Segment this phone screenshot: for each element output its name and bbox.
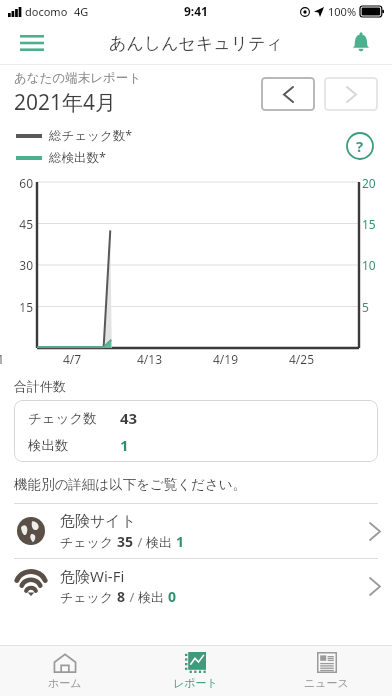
button[interactable]: 危険Wi-Fi xyxy=(0,559,392,613)
button[interactable]: Help xyxy=(342,128,378,164)
staticText: 合計件数 xyxy=(14,378,66,394)
staticText: 4/1 xyxy=(0,351,5,367)
staticText: / xyxy=(134,533,146,551)
staticText: 総検出数* xyxy=(49,149,106,166)
staticText: ニュース xyxy=(304,676,349,690)
staticText: チェック xyxy=(60,588,117,606)
staticText: 5 xyxy=(362,299,392,315)
staticText: チェック xyxy=(60,533,117,551)
staticText: ? xyxy=(356,136,364,156)
button[interactable]: ホーム xyxy=(0,646,130,696)
staticText: 20 xyxy=(362,175,392,191)
staticText: 機能別の詳細は以下をご覧ください。 xyxy=(14,476,247,493)
staticText: 4/13 xyxy=(137,351,163,367)
staticText: 15 xyxy=(362,216,392,232)
staticText: / xyxy=(126,588,138,606)
staticText: 危険Wi-Fi xyxy=(60,566,125,586)
button[interactable]: 危険サイト xyxy=(0,504,392,558)
staticText: レポート xyxy=(173,676,218,690)
staticText: 1 xyxy=(176,532,185,551)
staticText: 8 xyxy=(117,587,126,606)
staticText: チェック数 xyxy=(28,410,97,427)
staticText: 検出 xyxy=(146,533,176,551)
staticText: 9:41 xyxy=(184,3,208,19)
staticText: 10 xyxy=(362,257,392,273)
staticText: 30 xyxy=(0,257,33,273)
staticText: 0 xyxy=(168,587,177,606)
staticText: 検出数 xyxy=(28,437,69,454)
staticText: 4/25 xyxy=(289,351,315,367)
staticText: 4/7 xyxy=(63,351,82,367)
staticText: 4/19 xyxy=(213,351,239,367)
staticText: 危険サイト xyxy=(60,512,137,531)
staticText: 2021年4月 xyxy=(14,88,117,117)
staticText: 60 xyxy=(0,175,33,191)
staticText: docomo xyxy=(25,4,68,19)
staticText: ホーム xyxy=(48,676,82,690)
staticText: 検出 xyxy=(138,588,168,606)
staticText: あんしんセキュリティ xyxy=(109,33,283,54)
button[interactable]: ニュース xyxy=(261,646,392,696)
button[interactable]: Menu xyxy=(10,22,54,64)
staticText: 35 xyxy=(117,532,134,551)
staticText: 100% xyxy=(328,4,357,19)
button[interactable]: レポート xyxy=(130,646,261,696)
button[interactable]: Previous month xyxy=(261,77,315,111)
button[interactable]: Notifications xyxy=(340,22,382,64)
staticText: あなたの端末レポート xyxy=(14,70,142,86)
staticText: 4G xyxy=(74,4,89,19)
staticText: 43 xyxy=(120,408,138,428)
button[interactable]: Next month xyxy=(324,77,378,111)
staticText: 45 xyxy=(0,216,33,232)
staticText: 総チェック数* xyxy=(49,127,133,144)
staticText: 15 xyxy=(0,299,33,315)
staticText: 1 xyxy=(120,435,129,455)
